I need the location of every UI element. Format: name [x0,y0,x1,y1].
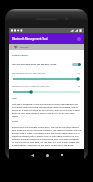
staticText: Help [12,97,17,100]
staticText: 30 [78,85,81,88]
button[interactable]: Back [25,150,39,160]
staticText: Discovery time for active scan (seconds) [12,85,78,88]
button[interactable]: Turn off Bluetooth when the app gets clo… [12,63,81,66]
staticText: Bluetooth is the strength of this work, … [12,126,81,147]
button[interactable] [12,90,81,94]
button[interactable]: Home [40,150,54,160]
button[interactable]: Bluetooth Management Tool [9,33,84,44]
button[interactable]: Settings [9,44,84,50]
button[interactable]: Recent apps [55,150,69,160]
staticText: Bluetooth Management Tool [12,37,48,41]
button[interactable] [12,77,81,81]
button[interactable]: Account [77,37,81,41]
staticText: Discoverable time for app (seconds) [12,72,77,75]
staticText: About [12,120,19,123]
staticText: Turn off Bluetooth when the app gets clo… [12,63,71,66]
staticText: 120 [77,72,81,75]
staticText: General Options [12,54,29,57]
staticText: This app is designed to help you make th… [12,103,81,118]
staticText: Settings [20,46,29,49]
